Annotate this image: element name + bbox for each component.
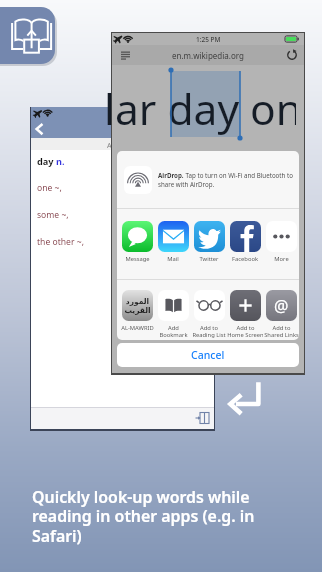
staticText: Tap to turn on Wi-Fi and Bluetooth to bbox=[184, 171, 294, 179]
button[interactable]: Add to Home Screen bbox=[227, 280, 263, 339]
staticText: Quickly look-up words while reading in o… bbox=[32, 486, 256, 547]
button[interactable]: More bbox=[263, 209, 299, 263]
button[interactable]: Add Bookmark bbox=[155, 280, 191, 339]
staticText: Mail bbox=[167, 255, 179, 263]
staticText: Add to Home Screen bbox=[227, 324, 263, 339]
staticText: 1:25 PM bbox=[196, 35, 221, 44]
staticText: AL-MAWRID bbox=[121, 324, 154, 332]
staticText: Add to Shared Links bbox=[264, 324, 299, 339]
button[interactable]: Message bbox=[119, 209, 155, 263]
staticText: share with AirDrop. bbox=[158, 180, 215, 188]
button[interactable]: Mail bbox=[155, 209, 191, 263]
staticText: Facebook bbox=[232, 255, 258, 263]
staticText: المورد القريب bbox=[124, 297, 151, 315]
staticText: Twitter bbox=[199, 255, 219, 263]
staticText: lar day on bbox=[104, 80, 296, 138]
other: Return arrow bbox=[224, 378, 264, 420]
button[interactable]: Dictionary app icon bbox=[0, 7, 55, 64]
button[interactable]: Twitter bbox=[191, 209, 227, 263]
staticText: Cancel bbox=[191, 348, 225, 362]
button[interactable]: Add to Reading List bbox=[191, 280, 227, 339]
button[interactable]: @ bbox=[263, 280, 299, 339]
staticText: one ~, bbox=[37, 182, 62, 194]
staticText: Add Bookmark bbox=[159, 324, 188, 339]
staticText: n. bbox=[56, 155, 65, 168]
staticText: More bbox=[274, 255, 289, 263]
staticText: en.m.wikipedia.org bbox=[172, 50, 244, 61]
button[interactable]: AirDrop. bbox=[117, 151, 299, 208]
staticText: Add to Reading List bbox=[192, 324, 226, 339]
button[interactable]: Facebook bbox=[227, 209, 263, 263]
staticText: Al-Mawrid Al-Qareeb bbox=[107, 140, 177, 150]
staticText: the other ~, bbox=[37, 236, 84, 248]
staticText: some ~, bbox=[37, 209, 69, 221]
staticText: day bbox=[37, 155, 56, 168]
staticText: @ bbox=[274, 295, 289, 317]
staticText: Message bbox=[125, 255, 150, 263]
button[interactable]: المورد القريب bbox=[119, 280, 155, 332]
staticText: AirDrop. bbox=[158, 171, 184, 179]
button[interactable]: Cancel bbox=[117, 343, 299, 367]
